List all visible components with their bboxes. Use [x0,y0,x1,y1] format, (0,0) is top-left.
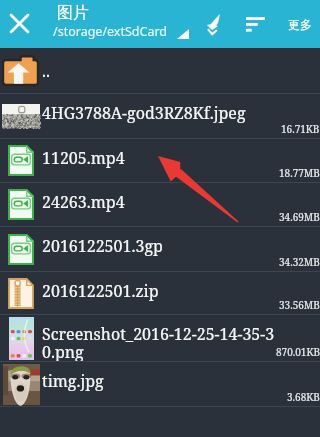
staticText: 2016122501.3gp [42,235,163,257]
staticText: 34.32MB [279,255,320,269]
button[interactable]: 2016122501.zip [0,272,320,314]
staticText: 33.56MB [279,298,320,312]
staticText: 24263.mp4 [42,191,125,213]
staticText: 更多 [288,17,312,32]
staticText: 18.77MB [279,166,320,180]
button[interactable]: timg.jpg [0,362,320,406]
button[interactable]: 11205.mp4 [0,139,320,182]
staticText: 2016122501.zip [42,280,159,302]
staticText: 11205.mp4 [42,147,125,169]
staticText: 16.71KB [281,122,320,136]
staticText: 870.01KB [276,345,320,359]
staticText: Screenshot_2016-12-25-14-35-30.png [42,323,278,361]
button[interactable]: Expand path [170,22,196,46]
button[interactable]: 图片 [53,3,178,40]
button[interactable]: Download [196,6,230,42]
button[interactable]: 更多 [279,8,320,40]
staticText: timg.jpg [42,370,104,392]
button[interactable]: Sort [236,8,274,40]
button[interactable]: 4HG3788A-god3RZ8Kf.jpeg [0,94,320,138]
staticText: 图片 [57,3,89,23]
button[interactable]: .. [0,48,320,93]
button[interactable]: Screenshot_2016-12-25-14-35-30.png [0,315,320,361]
staticText: 3.68KB [287,390,320,404]
staticText: .. [42,60,51,82]
staticText: 34.69MB [279,210,320,224]
button[interactable]: Close [0,4,38,42]
button[interactable]: 2016122501.3gp [0,227,320,271]
staticText: 4HG3788A-god3RZ8Kf.jpeg [42,102,246,124]
staticText: /storage/extSdCard [53,23,168,40]
button[interactable]: 24263.mp4 [0,183,320,226]
